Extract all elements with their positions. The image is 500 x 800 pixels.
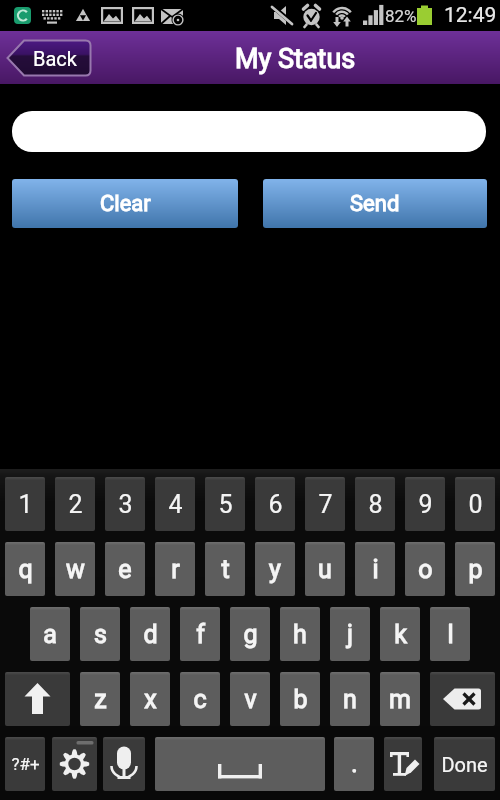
staticText: n (343, 685, 357, 714)
staticText: d (143, 620, 158, 649)
staticText: Back (33, 47, 77, 70)
staticText: ?#+ (11, 754, 40, 774)
staticText: 1 (18, 490, 33, 519)
button[interactable]: b (280, 672, 320, 726)
staticText: 82% (385, 6, 417, 26)
staticText: b (293, 685, 308, 714)
staticText: z (94, 685, 107, 714)
button[interactable]: Send (263, 179, 487, 228)
button[interactable]: . (334, 737, 374, 791)
button[interactable]: Space (155, 737, 325, 791)
staticText: t (221, 555, 230, 584)
button[interactable]: p (455, 542, 495, 596)
staticText: v (244, 685, 257, 714)
button[interactable]: 3 (105, 477, 145, 531)
button[interactable]: s (80, 607, 120, 661)
button[interactable] (12, 111, 486, 152)
staticText: j (347, 620, 353, 649)
button[interactable]: 2 (55, 477, 95, 531)
staticText: Send (350, 191, 400, 217)
button[interactable]: 0 (455, 477, 495, 531)
button[interactable]: Voice input (103, 737, 145, 791)
button[interactable]: f (180, 607, 220, 661)
button[interactable]: k (380, 607, 420, 661)
button[interactable]: h (280, 607, 320, 661)
button[interactable]: v (230, 672, 270, 726)
staticText: 12:49 (444, 3, 497, 28)
button[interactable]: ?#+ (5, 737, 45, 791)
button[interactable]: e (105, 542, 145, 596)
staticText: My Status (235, 43, 356, 75)
button[interactable]: q (5, 542, 45, 596)
staticText: o (418, 555, 433, 584)
button[interactable]: r (155, 542, 195, 596)
button[interactable]: m (380, 672, 420, 726)
staticText: c (193, 685, 207, 714)
button[interactable]: Settings (52, 737, 97, 791)
button[interactable]: Back (6, 39, 92, 77)
button[interactable]: u (305, 542, 345, 596)
staticText: 5 (218, 490, 233, 519)
button[interactable]: i (355, 542, 395, 596)
button[interactable]: o (405, 542, 445, 596)
button[interactable]: j (330, 607, 370, 661)
button[interactable]: y (255, 542, 295, 596)
staticText: 7 (318, 490, 333, 519)
staticText: e (118, 555, 132, 584)
staticText: h (293, 620, 307, 649)
button[interactable]: 6 (255, 477, 295, 531)
staticText: g (243, 620, 258, 649)
button[interactable]: 7 (305, 477, 345, 531)
button[interactable]: 5 (205, 477, 245, 531)
staticText: x (144, 685, 157, 714)
staticText: q (18, 555, 33, 584)
staticText: 4 (168, 490, 183, 519)
button[interactable]: z (80, 672, 120, 726)
staticText: m (389, 685, 411, 714)
button[interactable]: Handwriting (384, 737, 422, 791)
button[interactable]: 8 (355, 477, 395, 531)
button[interactable]: Clear (12, 179, 238, 228)
staticText: r (171, 555, 180, 584)
staticText: 8 (368, 490, 383, 519)
staticText: u (318, 555, 332, 584)
staticText: 0 (468, 490, 483, 519)
button[interactable]: 9 (405, 477, 445, 531)
staticText: 2 (68, 490, 83, 519)
button[interactable]: n (330, 672, 370, 726)
button[interactable]: g (230, 607, 270, 661)
button[interactable]: Backspace (430, 672, 495, 726)
staticText: y (269, 555, 281, 584)
staticText: p (468, 555, 483, 584)
button[interactable]: w (55, 542, 95, 596)
staticText: Done (441, 753, 488, 776)
button[interactable]: l (430, 607, 470, 661)
staticText: w (66, 555, 85, 584)
button[interactable]: 4 (155, 477, 195, 531)
button[interactable]: t (205, 542, 245, 596)
staticText: 6 (268, 490, 283, 519)
staticText: l (447, 620, 454, 649)
button[interactable]: d (130, 607, 170, 661)
staticText: 3 (118, 490, 133, 519)
staticText: i (372, 555, 379, 584)
staticText: f (196, 620, 205, 649)
button[interactable]: a (30, 607, 70, 661)
button[interactable]: x (130, 672, 170, 726)
staticText: Clear (100, 191, 151, 217)
button[interactable]: 1 (5, 477, 45, 531)
staticText: a (43, 620, 57, 649)
staticText: . (351, 750, 358, 778)
staticText: k (394, 620, 407, 649)
button[interactable]: Done (434, 737, 495, 791)
staticText: s (94, 620, 107, 649)
button[interactable]: Shift (5, 672, 70, 726)
button[interactable]: c (180, 672, 220, 726)
staticText: 9 (418, 490, 433, 519)
